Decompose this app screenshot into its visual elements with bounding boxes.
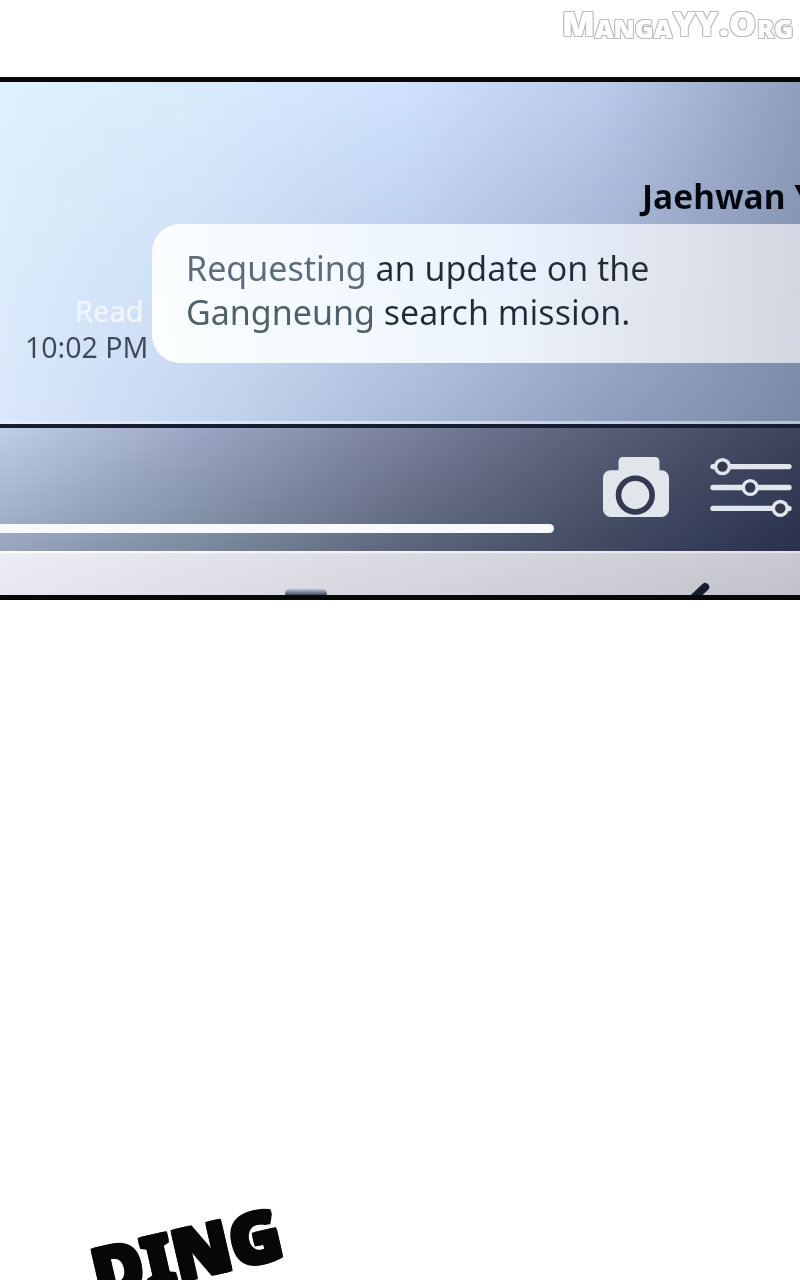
staticText: DING bbox=[80, 1184, 289, 1280]
staticText: . bbox=[718, 0, 728, 46]
staticText: M bbox=[563, 1, 596, 47]
staticText: YY bbox=[674, 1, 720, 47]
staticText: O bbox=[728, 0, 756, 45]
staticText: DING bbox=[79, 1182, 289, 1280]
staticText: YY bbox=[674, 0, 720, 46]
staticText: Read bbox=[75, 291, 144, 330]
staticText: M bbox=[563, 0, 596, 46]
staticText: ANGA bbox=[595, 12, 673, 47]
staticText: YY bbox=[673, 0, 719, 46]
staticText: YY bbox=[672, 1, 718, 47]
staticText: RG bbox=[757, 10, 794, 45]
staticText: RG bbox=[756, 11, 793, 46]
staticText: YY bbox=[673, 1, 719, 47]
staticText: ANGA bbox=[596, 12, 674, 47]
staticText: O bbox=[729, 1, 757, 47]
staticText: YY bbox=[673, 0, 719, 45]
staticText: ANGA bbox=[594, 10, 672, 45]
staticText: . bbox=[718, 0, 728, 45]
staticText: M bbox=[562, 1, 595, 47]
staticText: M bbox=[561, 0, 594, 45]
staticText: RG bbox=[758, 10, 795, 45]
staticText: RG bbox=[757, 12, 794, 47]
staticText: M bbox=[561, 0, 594, 46]
staticText: ANGA bbox=[594, 11, 672, 46]
staticText: DING bbox=[84, 1183, 293, 1280]
staticText: O bbox=[728, 1, 756, 47]
staticText: Jaehwan Y bbox=[642, 173, 800, 219]
staticText: DING bbox=[82, 1183, 291, 1280]
staticText: O bbox=[729, 0, 757, 46]
staticText: . bbox=[719, 0, 729, 46]
staticText: . bbox=[720, 1, 730, 47]
staticText: M bbox=[562, 0, 595, 46]
staticText: ANGA bbox=[596, 10, 674, 45]
staticText: ANGA bbox=[595, 11, 673, 46]
staticText: RG bbox=[756, 10, 793, 45]
staticText: . bbox=[720, 0, 730, 46]
staticText: DING bbox=[82, 1185, 292, 1280]
staticText: RG bbox=[756, 12, 793, 47]
staticText: ANGA bbox=[596, 11, 674, 46]
button[interactable]: Requesting an update on the Gangneung se… bbox=[152, 224, 800, 363]
staticText: YY bbox=[674, 0, 720, 45]
staticText: . bbox=[720, 0, 730, 45]
staticText: YY bbox=[672, 0, 718, 45]
staticText: DING bbox=[84, 1185, 294, 1280]
staticText: M bbox=[563, 0, 596, 45]
staticText: . bbox=[719, 0, 729, 45]
staticText: M bbox=[561, 1, 594, 47]
button[interactable]: Camera bbox=[594, 446, 678, 528]
button[interactable]: Settings bbox=[704, 445, 798, 529]
staticText: RG bbox=[757, 11, 794, 46]
staticText: M bbox=[562, 0, 595, 45]
staticText: O bbox=[730, 0, 758, 45]
staticText: DING bbox=[83, 1181, 293, 1280]
staticText: ANGA bbox=[594, 12, 672, 47]
staticText: RG bbox=[758, 11, 795, 46]
staticText: ANGA bbox=[595, 10, 673, 45]
staticText: O bbox=[728, 0, 756, 46]
staticText: Requesting an update on the Gangneung se… bbox=[186, 245, 650, 335]
staticText: . bbox=[718, 1, 728, 47]
staticText: O bbox=[730, 0, 758, 46]
staticText: . bbox=[719, 1, 729, 47]
staticText: RG bbox=[758, 12, 795, 47]
staticText: DING bbox=[81, 1182, 291, 1280]
staticText: O bbox=[730, 1, 758, 47]
staticText: 10:02 PM bbox=[25, 328, 149, 367]
staticText: YY bbox=[672, 0, 718, 46]
staticText: DING bbox=[80, 1186, 290, 1280]
staticText: O bbox=[729, 0, 757, 45]
